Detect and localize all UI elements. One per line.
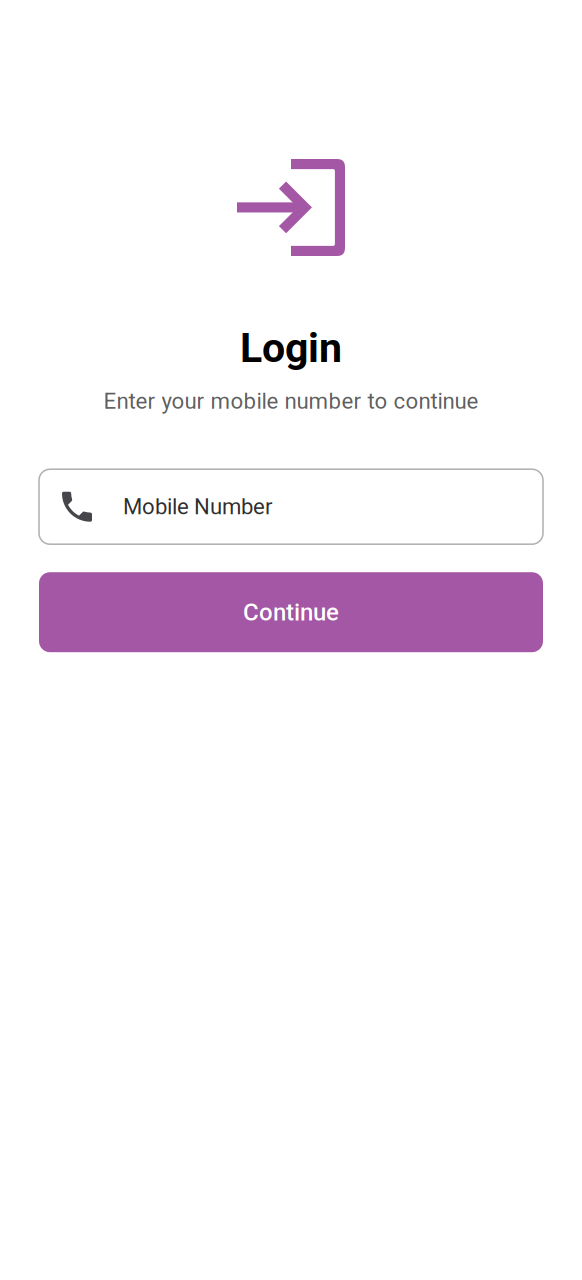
staticText: Continue xyxy=(243,598,339,626)
button[interactable]: Continue xyxy=(39,572,543,652)
staticText: Enter your mobile number to continue xyxy=(103,388,478,414)
button[interactable]: Mobile Number xyxy=(39,469,543,544)
staticText: Login xyxy=(240,324,342,372)
staticText: Mobile Number xyxy=(123,494,273,520)
